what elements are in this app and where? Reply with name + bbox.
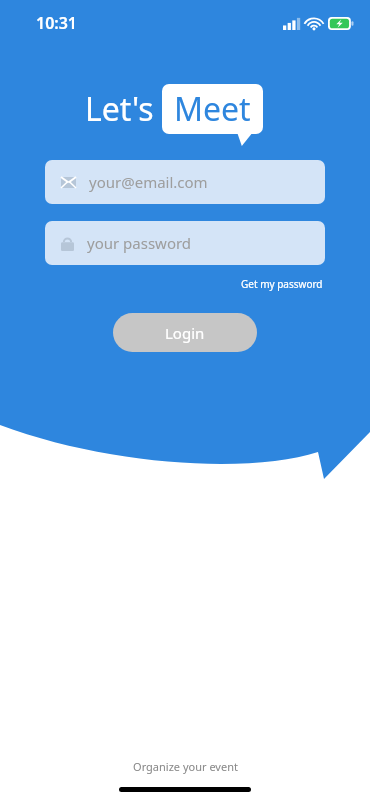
button[interactable]: your@email.com (45, 160, 325, 204)
staticText: your password (87, 233, 192, 253)
staticText: Login (165, 323, 205, 343)
staticText: Organize your event (133, 759, 238, 774)
button[interactable]: Login (113, 313, 257, 352)
staticText: Let's (85, 87, 154, 131)
button[interactable]: your password (45, 221, 325, 265)
staticText: Meet (174, 87, 251, 131)
staticText: Get my password (241, 277, 323, 291)
staticText: 10:31 (36, 12, 78, 34)
button[interactable]: Get my password (239, 275, 325, 293)
staticText: your@email.com (89, 172, 208, 192)
